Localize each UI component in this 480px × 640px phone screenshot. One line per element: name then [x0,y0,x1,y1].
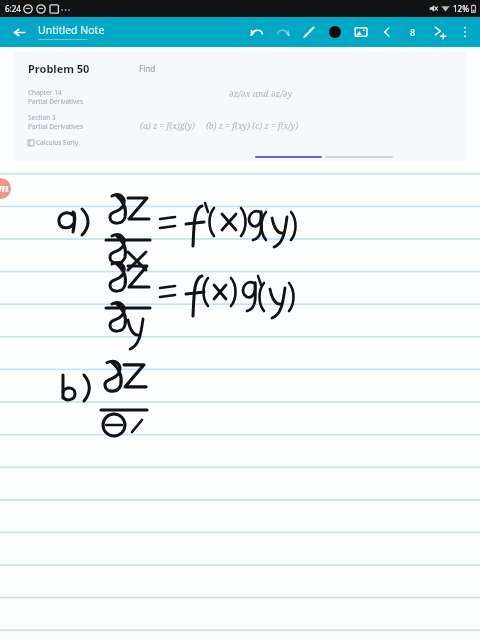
staticText: 12% [453,3,469,14]
staticText: Find [139,63,156,74]
button[interactable]: App logo [0,178,11,199]
staticText: ∂z/∂x and ∂z/∂y [229,87,293,99]
button[interactable]: Undo [244,19,270,45]
staticText: Problem 50 [28,61,90,76]
staticText: 8 [410,26,416,38]
button[interactable]: Insert image [348,19,374,45]
staticText: 6:24 [5,3,21,14]
staticText: Partial Derivatives [28,122,84,131]
staticText: Section 3 [28,113,56,122]
button[interactable]: Previous page [374,19,400,45]
button[interactable]: Untitled Note [38,23,105,42]
button[interactable]: Back [8,21,30,43]
staticText: Untitled Note [38,23,105,37]
button[interactable] [255,156,322,158]
button[interactable]: Pen [296,19,322,45]
staticText: Calculus Early [36,138,79,147]
staticText: Chapter 14 [28,88,62,97]
button[interactable]: Redo [270,19,296,45]
staticText: Partial Derivatives [28,97,84,106]
staticText: m [0,180,9,195]
button[interactable]: Colour [322,19,348,45]
button[interactable]: Add page [426,19,452,45]
button[interactable]: Problem 50 [14,51,466,161]
button[interactable]: 8 [400,19,426,45]
staticText: (a) z = f(x)g(y) (b) z = f(xy) (c) z = f… [140,120,299,132]
button[interactable]: More options [452,19,478,45]
